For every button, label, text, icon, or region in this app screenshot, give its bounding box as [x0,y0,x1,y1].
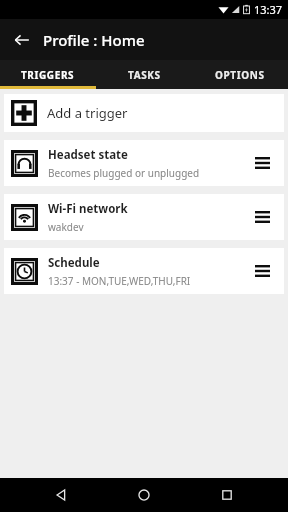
button[interactable]: Schedule [4,248,284,294]
staticText: Becomes plugged or unplugged [48,166,200,180]
button[interactable]: OPTIONS [192,60,288,89]
button[interactable]: Wi-Fi network [4,194,284,240]
staticText: 13:37 [254,2,283,17]
button[interactable]: Reorder [247,148,277,178]
staticText: Wi-Fi network [48,201,128,217]
button[interactable]: Reorder [247,256,277,286]
button[interactable]: TRIGGERS [0,60,96,89]
staticText: OPTIONS [215,68,265,82]
staticText: TRIGGERS [21,68,75,82]
button[interactable]: Headset state [4,140,284,186]
button[interactable]: Add a trigger [4,94,284,132]
staticText: Headset state [48,147,128,163]
staticText: TASKS [128,68,161,82]
staticText: Profile : Home [43,30,145,50]
staticText: Schedule [48,255,100,271]
button[interactable]: Reorder [247,202,277,232]
staticText: 13:37 - MON,TUE,WED,THU,FRI [48,274,191,288]
button[interactable]: Back [39,478,83,512]
button[interactable]: TASKS [96,60,192,89]
button[interactable]: Back [6,24,38,56]
button[interactable]: Recent apps [205,478,249,512]
staticText: wakdev [48,220,84,234]
staticText: Add a trigger [47,104,128,122]
button[interactable]: Home [122,478,166,512]
